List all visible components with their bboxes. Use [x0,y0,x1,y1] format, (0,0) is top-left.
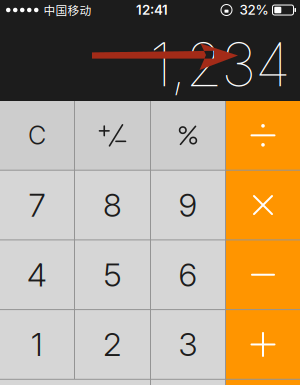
staticText: 8 [103,186,122,224]
button[interactable]: C [0,101,74,170]
button[interactable]: 1 [0,310,74,379]
button[interactable]: 7 [0,171,74,239]
button[interactable]: 9 [151,171,225,239]
staticText: 12:41 [136,2,168,18]
button[interactable]: 8 [75,171,150,239]
button[interactable]: Multiply [226,171,300,239]
staticText: 1 [31,325,43,364]
button[interactable]: Divide [226,101,300,170]
button[interactable]: Plus minus [75,101,150,170]
staticText: 2 [103,325,122,364]
staticText: 9 [178,186,197,224]
staticText: 6 [178,255,197,294]
staticText: 4 [27,255,47,294]
staticText: 中国移动 [43,1,91,18]
button[interactable]: Minus [226,240,300,309]
button[interactable]: 4 [0,240,74,309]
button[interactable]: 3 [151,310,225,379]
staticText: 5 [103,255,121,294]
staticText: 7 [28,186,45,224]
staticText: 32% [239,2,268,18]
button[interactable]: 5 [75,240,150,309]
button[interactable]: 6 [151,240,225,309]
staticText: 1,234 [150,28,291,101]
button[interactable]: 2 [75,310,150,379]
staticText: 3 [178,325,197,364]
button[interactable]: Plus [226,310,300,379]
button[interactable]: Percent [151,101,225,170]
staticText: C [28,120,46,151]
